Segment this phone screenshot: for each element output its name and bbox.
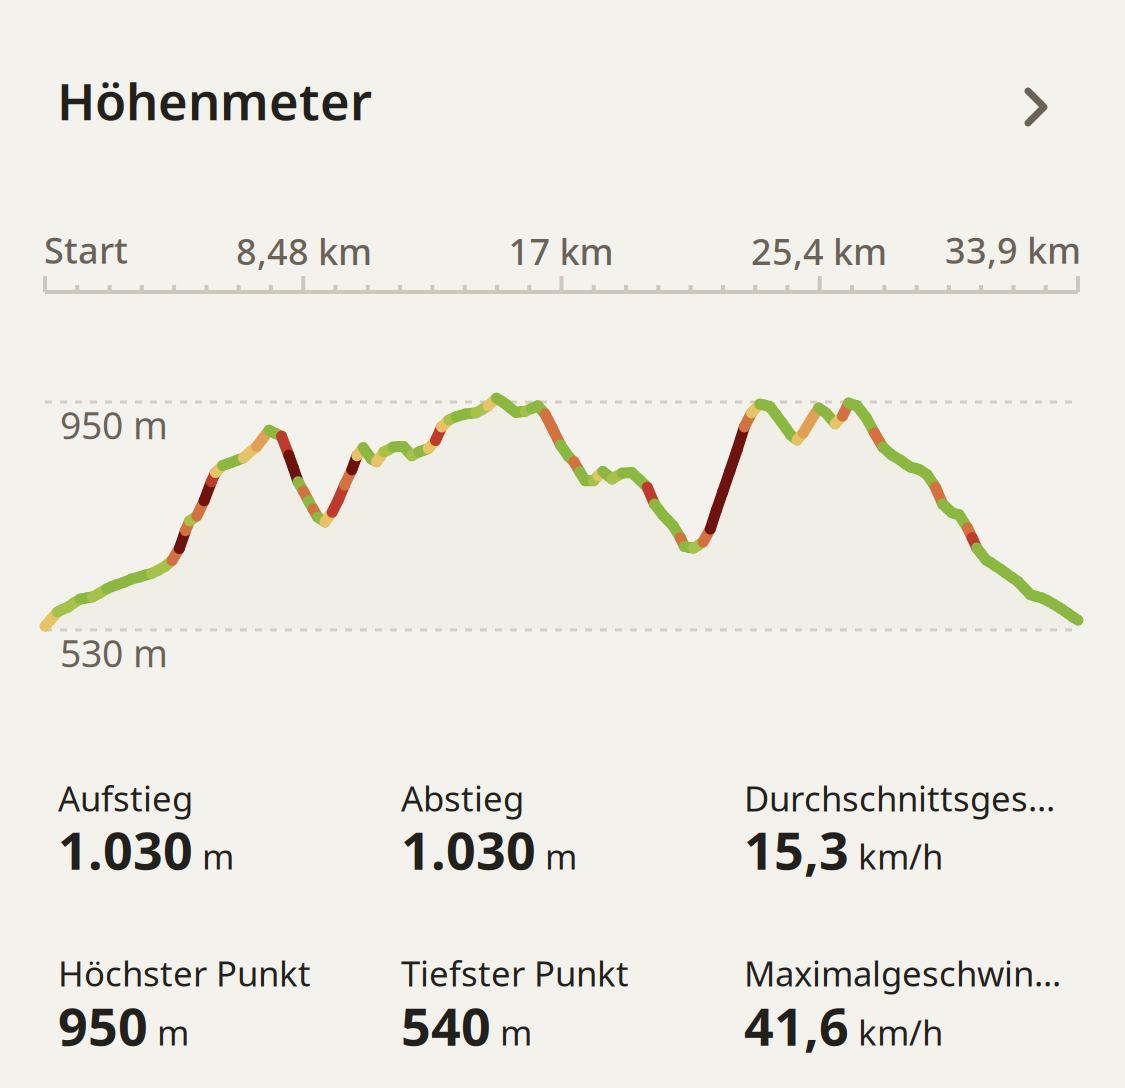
staticText: 8,48 km: [236, 227, 372, 275]
staticText: m: [157, 1009, 189, 1055]
staticText: 33,9 km: [945, 226, 1081, 274]
staticText: km/h: [858, 833, 943, 879]
button[interactable]: Höhenmeter: [0, 0, 392, 156]
staticText: 540: [401, 991, 491, 1060]
staticText: m: [500, 1009, 532, 1055]
staticText: 17 km: [508, 227, 613, 275]
staticText: 25,4 km: [751, 227, 887, 275]
staticText: 1.030: [58, 815, 193, 884]
staticText: Abstieg: [401, 775, 524, 821]
staticText: m: [202, 833, 234, 879]
staticText: km/h: [858, 1009, 943, 1055]
staticText: Maximalgeschwin...: [744, 950, 1061, 996]
staticText: 530 m: [60, 628, 168, 678]
button[interactable]: Show details: [1009, 74, 1063, 140]
staticText: 15,3: [744, 815, 849, 884]
staticText: 41,6: [744, 991, 849, 1060]
staticText: Tiefster Punkt: [401, 950, 629, 996]
staticText: Aufstieg: [58, 775, 193, 821]
staticText: 1.030: [401, 815, 536, 884]
staticText: 950 m: [60, 400, 168, 450]
staticText: Durchschnittsges...: [744, 775, 1055, 821]
staticText: Höchster Punkt: [58, 950, 311, 996]
staticText: 950: [58, 991, 148, 1060]
staticText: Start: [44, 226, 128, 274]
staticText: m: [545, 833, 577, 879]
staticText: Höhenmeter: [57, 67, 372, 134]
